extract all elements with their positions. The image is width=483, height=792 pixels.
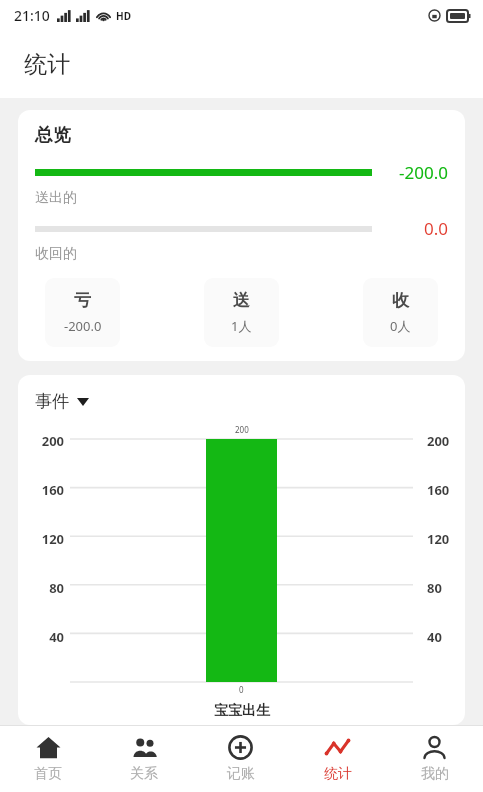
button[interactable]: 记账 [192,726,289,792]
staticText: 送 [233,290,250,311]
staticText: 160 [18,481,64,499]
button[interactable]: 我的 [386,726,483,792]
staticText: 收 [392,290,409,311]
button[interactable]: 送 [204,278,279,347]
staticText: 送出的 [35,189,77,207]
button[interactable]: 亏 [45,278,120,347]
staticText: 关系 [130,765,158,783]
other: 我的 [422,735,447,760]
staticText: 120 [427,530,465,548]
staticText: 200 [235,424,249,435]
button[interactable]: 统计 [289,726,386,792]
staticText: 21:10 [14,6,50,25]
staticText: 80 [427,579,465,597]
staticText: 宝宝出生 [214,702,270,720]
button[interactable]: 事件 [35,391,89,412]
other: 统计 [325,735,350,760]
staticText: 0.0 [423,217,448,240]
staticText: 0 [239,684,244,695]
other: 记账 [228,735,253,760]
staticText: 1人 [231,317,252,335]
staticText: 记账 [227,765,255,783]
staticText: 总览 [35,124,71,147]
staticText: 0人 [390,317,411,335]
staticText: 统计 [24,50,70,79]
other: 首页 [36,735,61,760]
staticText: 40 [18,628,64,646]
staticText: 事件 [35,391,69,412]
staticText: 首页 [34,765,62,783]
staticText: 收回的 [35,245,77,263]
staticText: 我的 [421,765,449,783]
button[interactable]: 首页 [0,726,96,792]
staticText: 80 [18,579,64,597]
button[interactable]: 收 [363,278,438,347]
button[interactable]: 关系 [96,726,192,792]
staticText: 200 [18,432,64,450]
staticText: 统计 [324,765,352,783]
staticText: -200.0 [64,317,102,335]
other: 关系 [132,735,157,760]
staticText: 120 [18,530,64,548]
staticText: HD [116,9,131,23]
staticText: 亏 [74,290,91,311]
staticText: 40 [427,628,465,646]
staticText: 200 [427,432,465,450]
staticText: -200.0 [399,161,448,184]
staticText: 160 [427,481,465,499]
